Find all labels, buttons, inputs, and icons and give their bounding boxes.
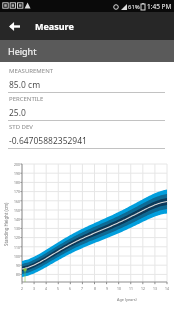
staticText: 6 bbox=[69, 286, 71, 291]
staticText: 10 bbox=[117, 286, 121, 291]
staticText: 85.0 cm bbox=[9, 79, 41, 91]
staticText: 25.0 bbox=[9, 107, 26, 119]
staticText: 11 bbox=[129, 286, 133, 291]
staticText: MEASUREMENT bbox=[9, 67, 54, 75]
staticText: 110 bbox=[14, 245, 20, 250]
button[interactable]: MEASUREMENT bbox=[0, 67, 174, 95]
staticText: 3 bbox=[33, 286, 35, 291]
staticText: 14 bbox=[165, 286, 169, 291]
staticText: 61% bbox=[128, 3, 140, 11]
staticText: -0.64705882352941 bbox=[9, 135, 87, 147]
button[interactable]: Back bbox=[0, 12, 28, 40]
staticText: 7 bbox=[81, 286, 83, 291]
staticText: 2 bbox=[21, 286, 23, 291]
staticText: 190 bbox=[14, 171, 20, 176]
staticText: 150 bbox=[14, 208, 20, 213]
staticText: Height bbox=[8, 45, 37, 57]
staticText: 90 bbox=[16, 263, 20, 268]
staticText: 180 bbox=[14, 180, 20, 185]
staticText: 80 bbox=[16, 272, 20, 277]
staticText: 160 bbox=[14, 199, 20, 204]
staticText: 140 bbox=[14, 217, 20, 222]
staticText: 130 bbox=[14, 226, 20, 231]
button[interactable]: Height bbox=[0, 40, 174, 62]
staticText: 170 bbox=[14, 189, 20, 194]
staticText: STD DEV bbox=[9, 123, 33, 131]
staticText: Age (years) bbox=[117, 297, 137, 302]
staticText: 1:45 PM bbox=[147, 2, 172, 11]
button[interactable]: STD DEV bbox=[0, 123, 174, 151]
staticText: 9 bbox=[106, 286, 108, 291]
staticText: 8 bbox=[94, 286, 96, 291]
button[interactable]: PERCENTILE bbox=[0, 95, 174, 123]
staticText: 5 bbox=[57, 286, 59, 291]
staticText: 120 bbox=[14, 235, 20, 240]
staticText: 12 bbox=[141, 286, 145, 291]
staticText: Measure bbox=[35, 20, 74, 32]
staticText: Standing Height (cm) bbox=[3, 202, 9, 246]
staticText: 4 bbox=[45, 286, 47, 291]
staticText: 200 bbox=[14, 162, 20, 167]
staticText: 100 bbox=[14, 254, 20, 259]
staticText: PERCENTILE bbox=[9, 95, 44, 103]
staticText: 13 bbox=[153, 286, 157, 291]
